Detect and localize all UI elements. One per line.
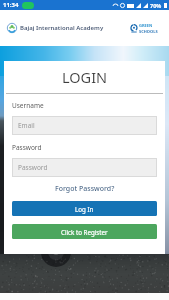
button[interactable]: Email <box>12 116 157 135</box>
staticText: Email <box>18 121 35 130</box>
staticText: SCHOOLS <box>139 29 158 34</box>
staticText: Log In <box>75 205 94 213</box>
button[interactable]: Forgot Password? <box>12 182 157 195</box>
button[interactable]: Password <box>12 158 157 177</box>
staticText: GREEN <box>139 23 153 28</box>
staticText: Forgot Password? <box>55 184 115 194</box>
staticText: Password <box>12 143 42 152</box>
staticText: Click to Register <box>61 228 108 236</box>
staticText: 70% <box>150 2 162 9</box>
button[interactable]: Click to Register <box>12 224 157 239</box>
staticText: Username <box>12 101 44 110</box>
button[interactable]: Log In <box>12 201 157 216</box>
staticText: LOGIN <box>4 67 165 87</box>
staticText: 11:34 <box>3 1 19 9</box>
staticText: Bajaj International Academy <box>20 24 104 32</box>
staticText: Password <box>18 163 48 172</box>
